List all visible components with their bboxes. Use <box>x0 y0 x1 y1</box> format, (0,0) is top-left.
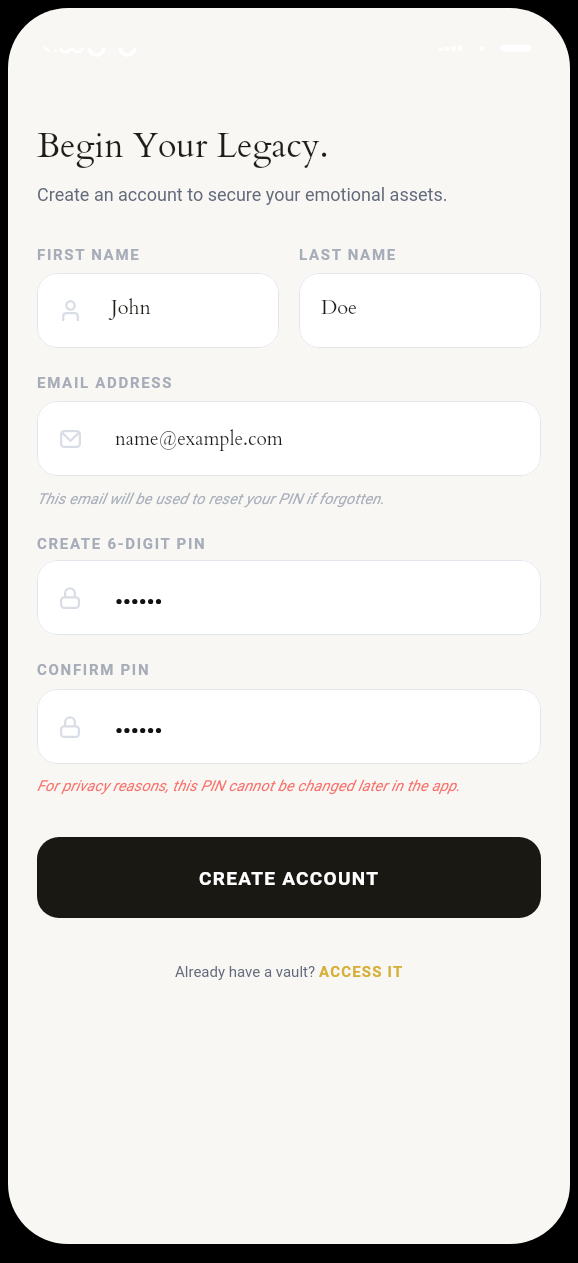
staticText: For privacy reasons, this PIN cannot be … <box>37 777 461 795</box>
staticText: CONFIRM PIN <box>37 661 151 679</box>
staticText: Begin Your Legacy. <box>37 123 329 169</box>
staticText: CREATE 6-DIGIT PIN <box>37 535 207 553</box>
staticText: CREATE ACCOUNT <box>199 867 380 889</box>
staticText: This email will be used to reset your PI… <box>37 490 385 508</box>
staticText: EMAIL ADDRESS <box>37 374 174 392</box>
staticText: FIRST NAME <box>37 246 141 264</box>
staticText: name@example.com <box>115 426 283 452</box>
button[interactable]: Create 6-digit PIN <box>37 560 541 635</box>
staticText: LAST NAME <box>299 246 397 264</box>
staticText: Create an account to secure your emotion… <box>37 184 448 205</box>
button[interactable]: Already have a vault? <box>175 963 404 981</box>
staticText: ACCESS IT <box>319 963 404 981</box>
staticText: John <box>111 294 151 321</box>
button[interactable]: Confirm PIN <box>37 689 541 764</box>
button[interactable]: First name <box>37 273 279 348</box>
button[interactable]: Last name <box>299 273 541 348</box>
staticText: Already have a vault? <box>175 963 319 981</box>
staticText: Doe <box>321 294 358 321</box>
button[interactable]: Email address <box>37 401 541 476</box>
button[interactable]: CREATE ACCOUNT <box>37 837 541 918</box>
